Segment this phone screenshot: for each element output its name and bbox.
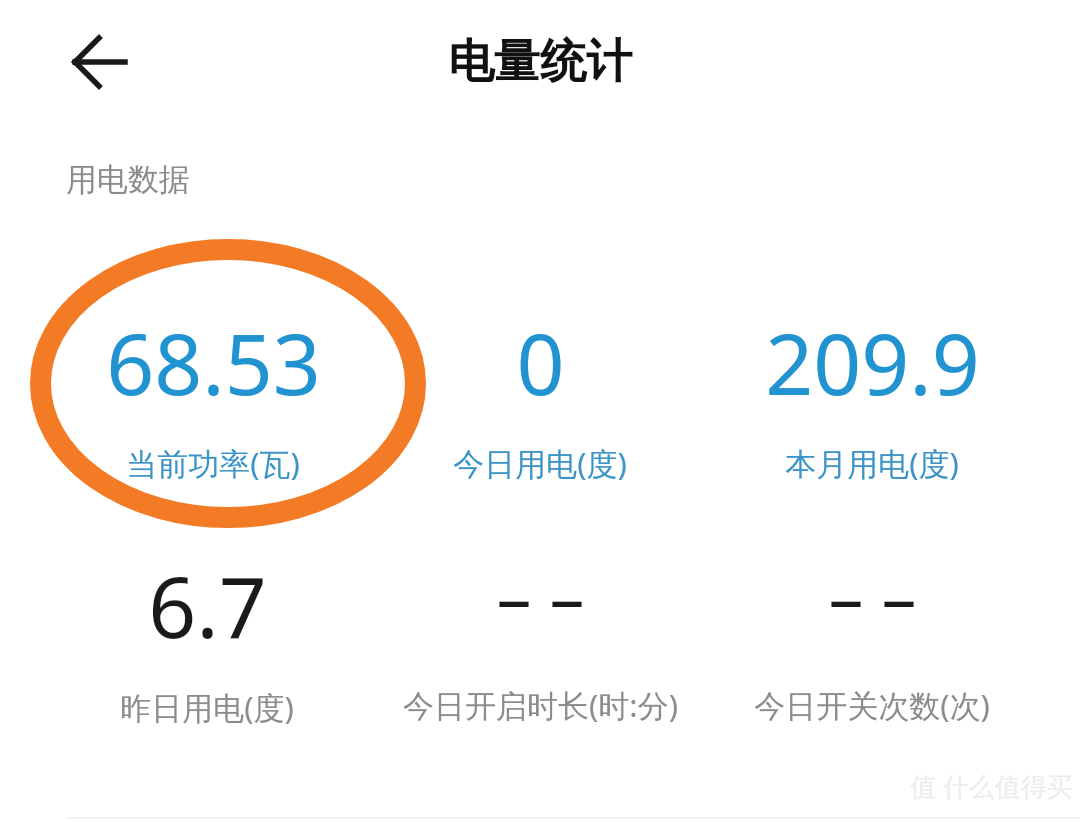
button[interactable]: – – (360, 548, 720, 726)
staticText: 昨日用电(度) (120, 686, 294, 728)
staticText: 今日用电(度) (453, 442, 627, 484)
staticText: 今日开启时长(时:分) (403, 684, 678, 726)
staticText: 6.7 (148, 548, 267, 662)
button[interactable]: 6.7 (27, 548, 387, 728)
button[interactable]: 0 (360, 305, 720, 484)
staticText: 0 (516, 305, 565, 419)
button[interactable]: – – (692, 548, 1052, 726)
staticText: – – (496, 548, 585, 643)
staticText: 68.53 (106, 305, 321, 419)
staticText: 当前功率(瓦) (126, 442, 300, 484)
staticText: 209.9 (765, 305, 980, 419)
staticText: 本月用电(度) (785, 442, 959, 484)
staticText: – – (828, 548, 917, 643)
button[interactable]: 209.9 (692, 305, 1052, 484)
staticText: 电量统计 (448, 33, 632, 91)
staticText: 用电数据 (66, 160, 190, 199)
button[interactable]: Back (52, 14, 148, 110)
staticText: 值 什么值得买 (910, 768, 1073, 804)
staticText: 今日开关次数(次) (754, 684, 990, 726)
button[interactable]: 68.53 (33, 305, 393, 484)
